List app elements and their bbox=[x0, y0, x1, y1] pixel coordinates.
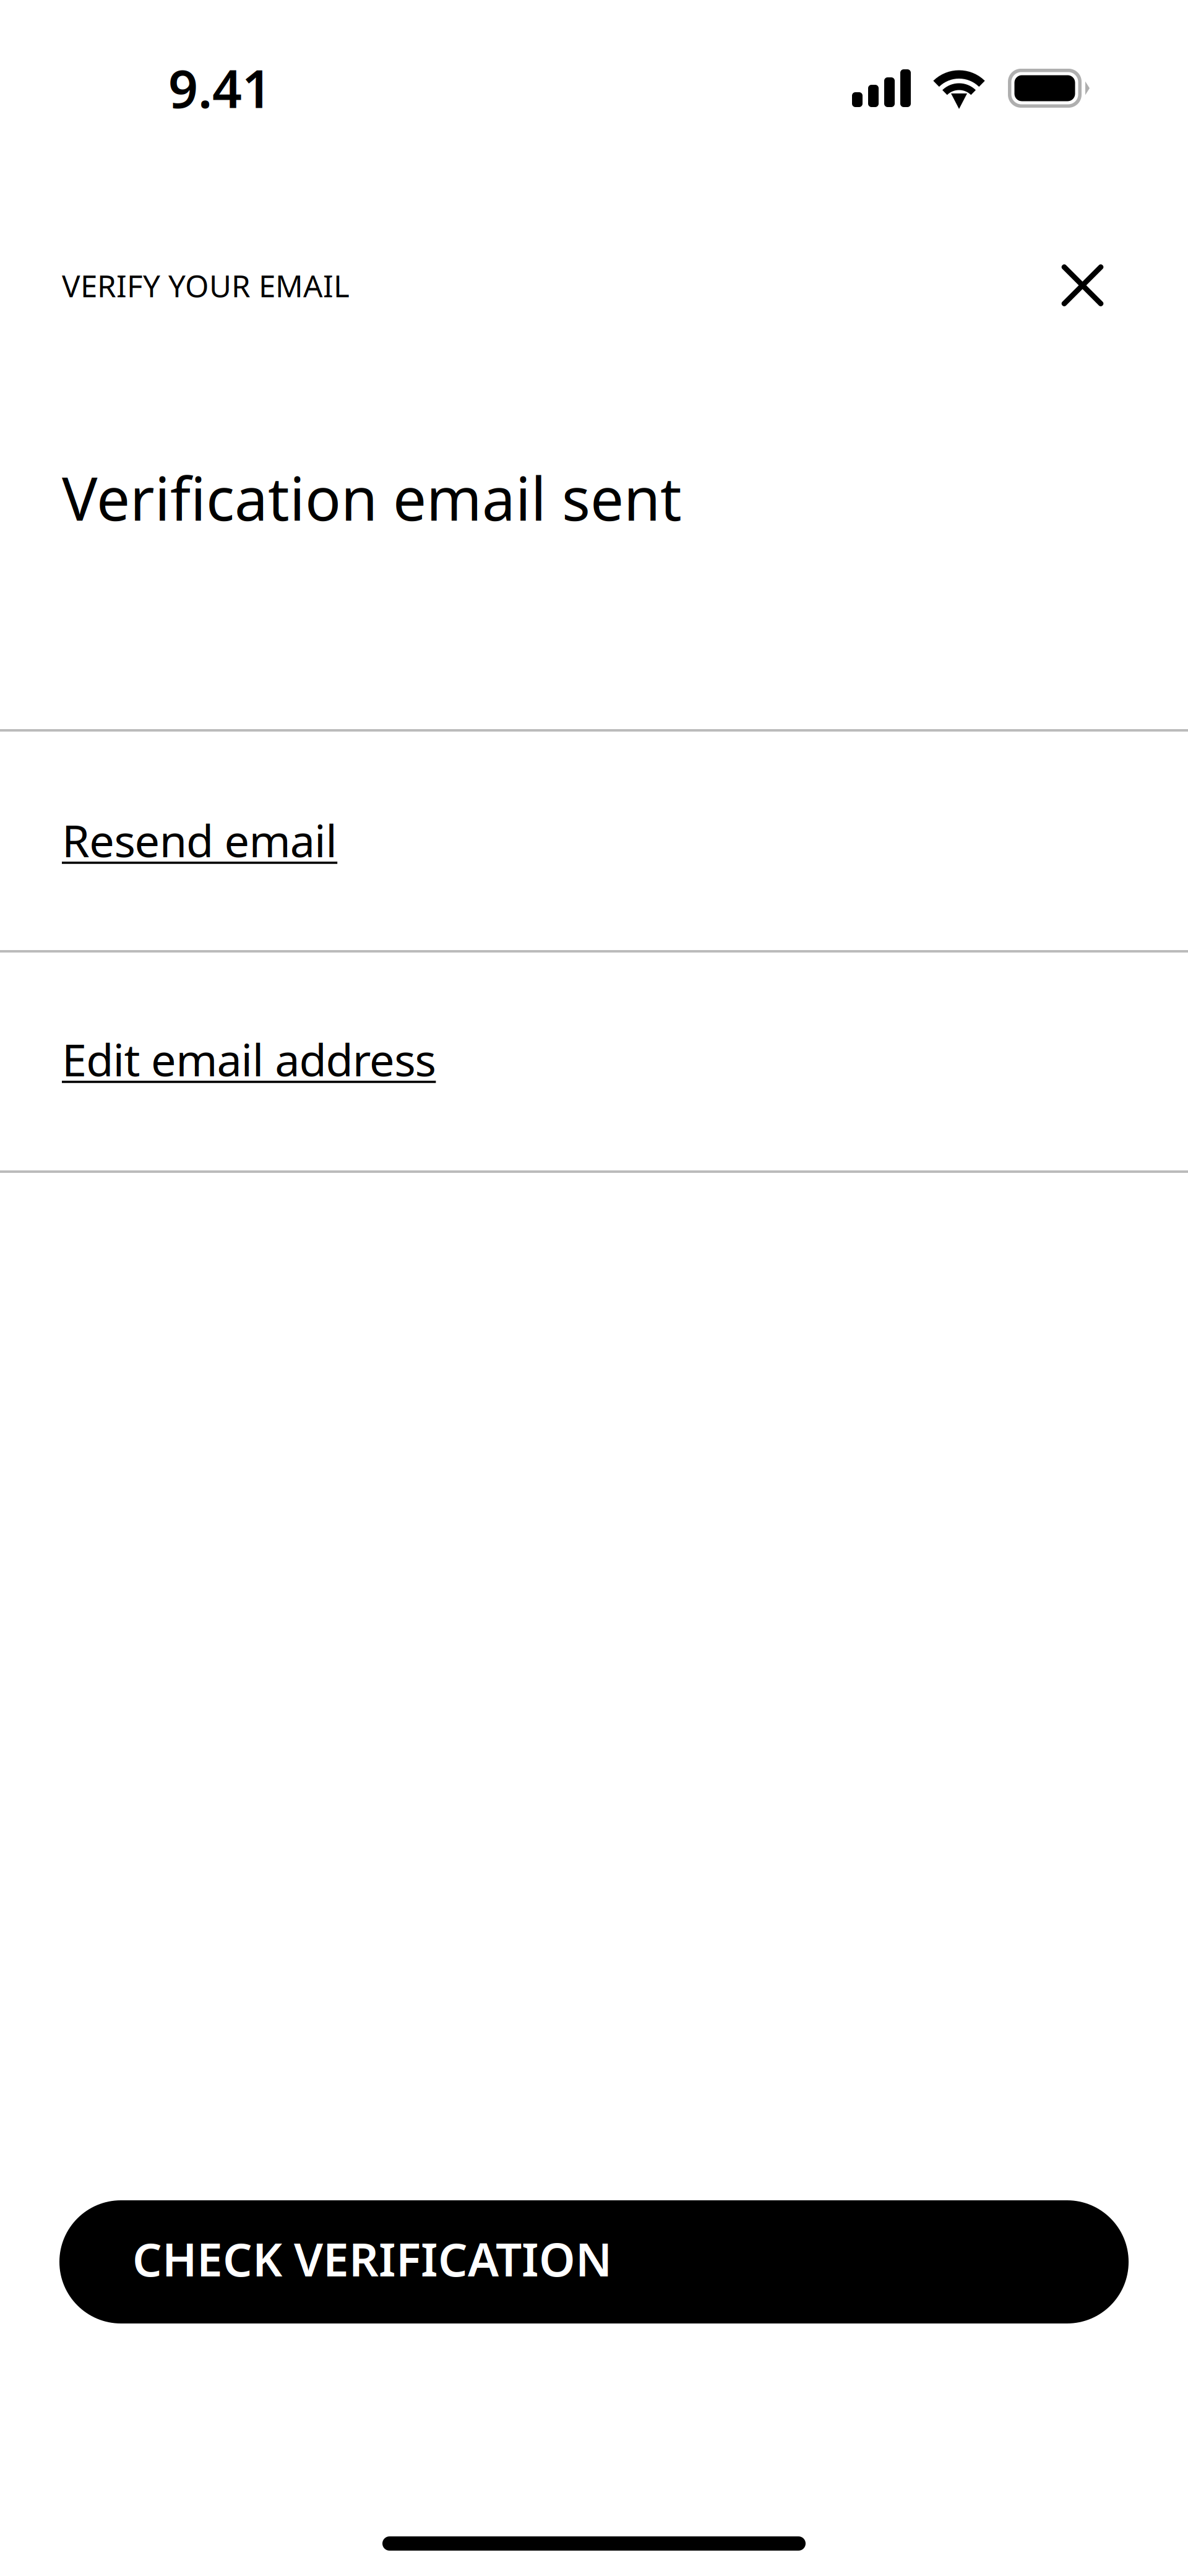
staticText: VERIFY YOUR EMAIL bbox=[62, 265, 350, 306]
staticText: CHECK VERIFICATION bbox=[132, 2228, 612, 2289]
staticText: Edit email address bbox=[62, 1029, 436, 1089]
staticText: 9.41 bbox=[168, 53, 272, 122]
staticText: Resend email bbox=[62, 810, 337, 869]
button[interactable]: Edit email address bbox=[0, 953, 1188, 1170]
staticText: Verification email sent bbox=[62, 458, 682, 537]
button[interactable]: Close bbox=[1044, 247, 1121, 324]
button[interactable]: Resend email bbox=[0, 732, 1188, 950]
button[interactable]: CHECK VERIFICATION bbox=[59, 2200, 1129, 2323]
